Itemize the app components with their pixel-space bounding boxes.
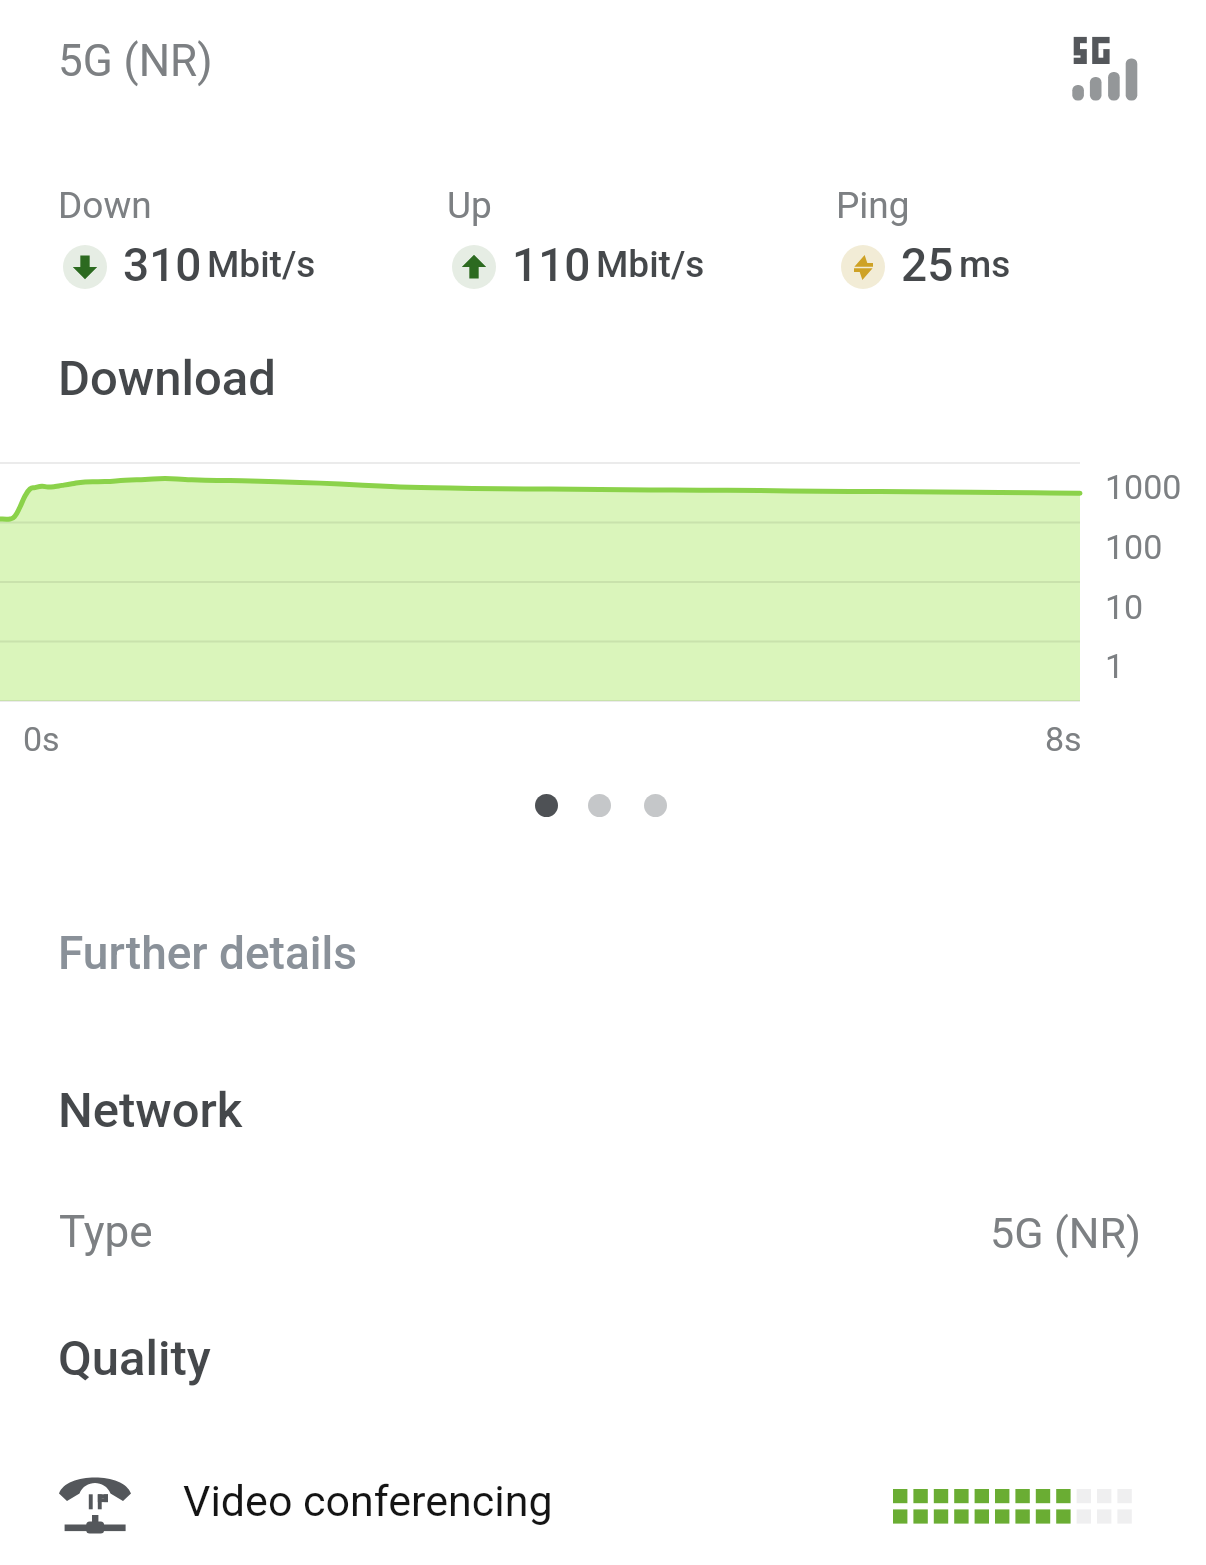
staticText: 8s [1045, 719, 1082, 759]
staticText: Type [59, 1206, 153, 1258]
staticText: 5G (NR) [58, 35, 213, 87]
staticText: Mbit/s [596, 243, 705, 286]
staticText: Ping [836, 184, 910, 227]
button[interactable]: Video conferencing [0, 1455, 1206, 1550]
staticText: Network [58, 1082, 243, 1139]
staticText: 25 [901, 238, 954, 290]
button[interactable]: Page 2 [588, 794, 611, 817]
staticText: 0s [23, 719, 60, 759]
staticText: 1 [1105, 646, 1125, 686]
staticText: Video conferencing [183, 1476, 553, 1526]
staticText: 110 [512, 238, 591, 290]
staticText: Further details [58, 926, 357, 980]
button[interactable]: Further details [58, 926, 357, 980]
staticText: Download [58, 350, 276, 407]
button[interactable]: 5G signal strength [1064, 24, 1148, 104]
staticText: 100 [1105, 527, 1163, 567]
staticText: Quality [58, 1330, 211, 1387]
other: Quality rating 9 of 12 [893, 1489, 1132, 1524]
staticText: Up [447, 184, 492, 227]
staticText: 1000 [1105, 467, 1182, 507]
button[interactable]: Page 3 [644, 794, 667, 817]
staticText: 310 [123, 238, 202, 290]
staticText: ms [959, 243, 1011, 286]
staticText: Down [58, 184, 152, 227]
staticText: Mbit/s [207, 243, 316, 286]
button[interactable]: Page 1 [535, 794, 558, 817]
staticText: 10 [1105, 587, 1144, 627]
staticText: 5G (NR) [990, 1208, 1141, 1258]
